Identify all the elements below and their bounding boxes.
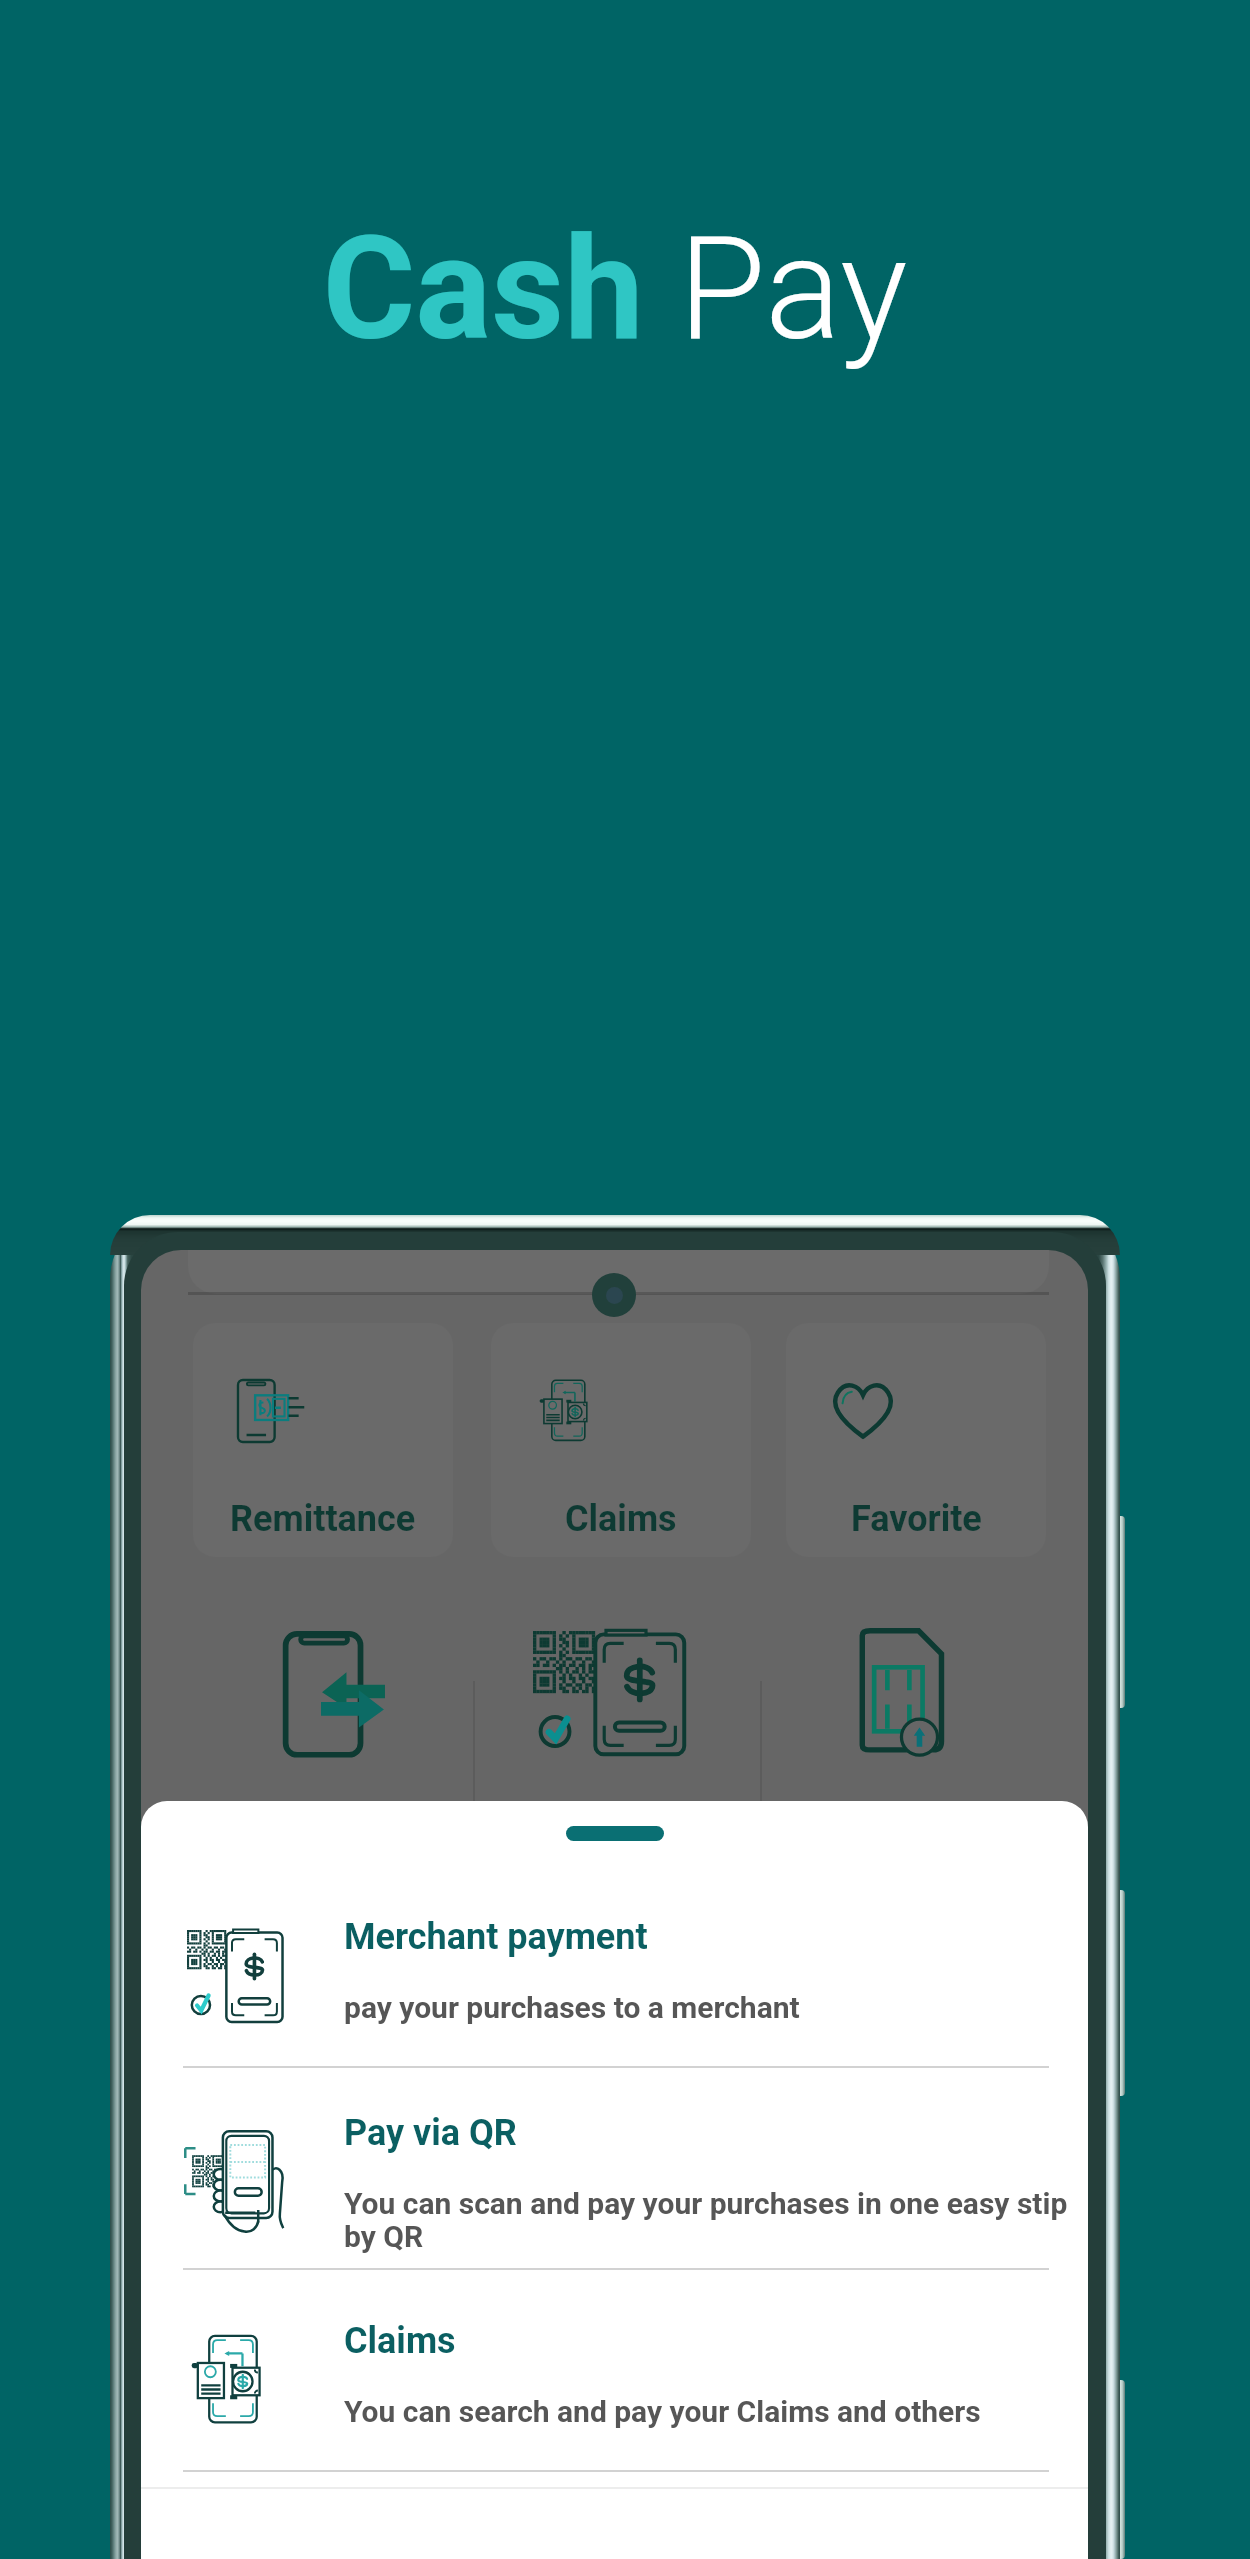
staticText: Favorite [851,1498,982,1540]
staticText: Cash Pay [0,206,1240,372]
button[interactable]: Pay via QR [141,2068,1088,2270]
staticText: Claims [344,2320,456,2362]
button[interactable]: Drag handle [566,1826,664,1841]
button[interactable]: Merchant payment [141,1866,1088,2068]
staticText: You can search and pay your Claims and o… [344,2394,981,2429]
staticText: Pay via QR [344,2112,517,2154]
button[interactable]: Favorite [786,1323,1046,1557]
staticText: Merchant payment [344,1916,648,1958]
button[interactable]: Claims [141,2270,1088,2472]
staticText: Remittance [230,1498,416,1540]
button[interactable]: Claims [491,1323,751,1557]
staticText: pay your purchases to a merchant [344,1990,800,2025]
staticText: Claims [565,1498,677,1540]
staticText: You can scan and pay your purchases in o… [344,2186,1088,2254]
button[interactable]: Remittance [193,1323,453,1557]
